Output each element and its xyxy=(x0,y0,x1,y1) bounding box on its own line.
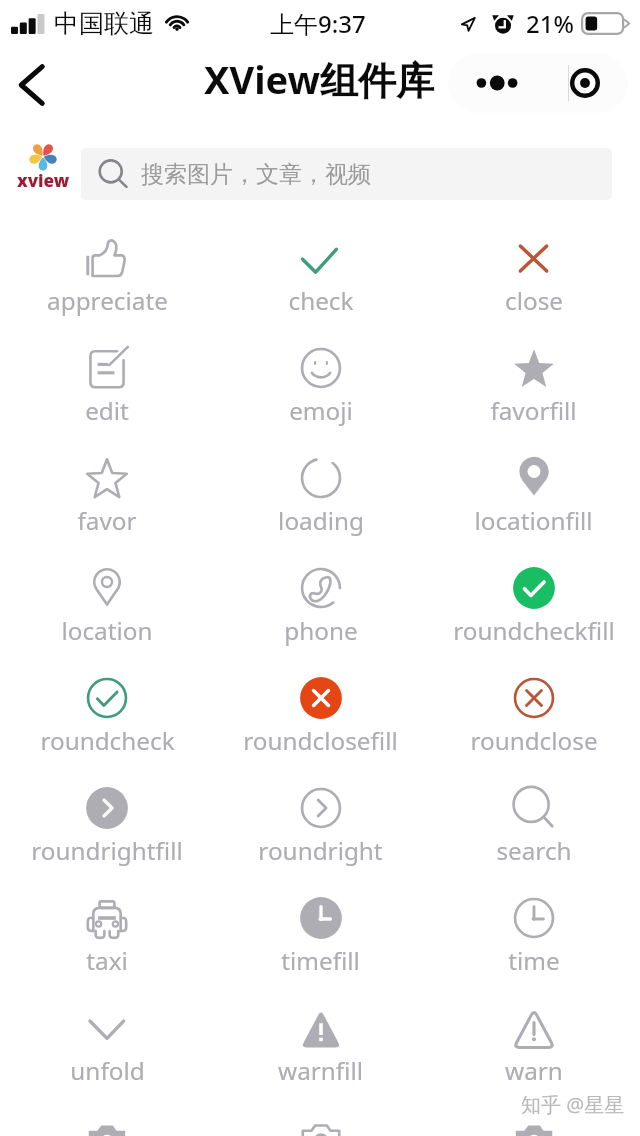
button[interactable]: timefill xyxy=(214,888,427,998)
button[interactable]: roundrightfill xyxy=(0,778,214,888)
button[interactable]: location xyxy=(0,558,214,668)
button[interactable]: More xyxy=(448,53,540,113)
staticText: roundrightfill xyxy=(31,834,183,867)
button[interactable]: locationfill xyxy=(427,448,640,558)
staticText: favor xyxy=(77,504,137,537)
staticText: emoji xyxy=(289,394,353,427)
staticText: warn xyxy=(505,1054,563,1087)
staticText: time xyxy=(508,944,560,977)
button[interactable]: roundright xyxy=(214,778,427,888)
button[interactable]: favor xyxy=(0,448,214,558)
staticText: location xyxy=(61,614,153,647)
staticText: timefill xyxy=(281,944,360,977)
button[interactable]: time xyxy=(427,888,640,998)
button[interactable]: warn xyxy=(427,998,640,1108)
button[interactable]: roundcheckfill xyxy=(427,558,640,668)
button[interactable]: roundcheck xyxy=(0,668,214,778)
staticText: roundright xyxy=(258,834,383,867)
button[interactable]: taxi xyxy=(0,888,214,998)
button[interactable]: Back xyxy=(4,56,62,114)
staticText: 21% xyxy=(526,7,574,40)
button[interactable]: search xyxy=(427,778,640,888)
button[interactable]: emoji xyxy=(214,338,427,448)
button[interactable]: unfold xyxy=(0,998,214,1108)
staticText: check xyxy=(288,284,354,317)
staticText: warnfill xyxy=(278,1054,363,1087)
button[interactable]: edit xyxy=(0,338,214,448)
button[interactable]: close xyxy=(427,228,640,338)
staticText: appreciate xyxy=(47,284,168,317)
staticText: roundcheckfill xyxy=(453,614,615,647)
staticText: unfold xyxy=(70,1054,145,1087)
staticText: phone xyxy=(284,614,358,647)
staticText: taxi xyxy=(86,944,128,977)
staticText: 上午9:37 xyxy=(270,7,366,40)
staticText: 搜索图片，文章，视频 xyxy=(141,160,371,189)
staticText: roundclose xyxy=(470,724,598,757)
staticText: XView组件库 xyxy=(204,53,434,105)
staticText: roundclosefill xyxy=(243,724,398,757)
staticText: 中国联通 xyxy=(54,8,154,39)
staticText: locationfill xyxy=(474,504,593,537)
staticText: roundcheck xyxy=(40,724,175,757)
button[interactable] xyxy=(427,1108,640,1136)
button[interactable]: Close xyxy=(541,53,628,113)
button[interactable]: loading xyxy=(214,448,427,558)
button[interactable] xyxy=(214,1108,427,1136)
button[interactable]: phone xyxy=(214,558,427,668)
button[interactable]: favorfill xyxy=(427,338,640,448)
staticText: edit xyxy=(85,394,129,427)
staticText: 知乎 @星星 xyxy=(521,1091,625,1118)
button[interactable] xyxy=(0,1108,214,1136)
button[interactable]: check xyxy=(214,228,427,338)
button[interactable]: roundclosefill xyxy=(214,668,427,778)
staticText: favorfill xyxy=(490,394,577,427)
staticText: close xyxy=(505,284,563,317)
staticText: search xyxy=(496,834,572,867)
button[interactable]: 搜索图片，文章，视频 xyxy=(81,148,612,200)
button[interactable]: roundclose xyxy=(427,668,640,778)
staticText: loading xyxy=(278,504,364,537)
button[interactable]: warnfill xyxy=(214,998,427,1108)
button[interactable]: appreciate xyxy=(0,228,214,338)
staticText: xview xyxy=(17,169,70,192)
